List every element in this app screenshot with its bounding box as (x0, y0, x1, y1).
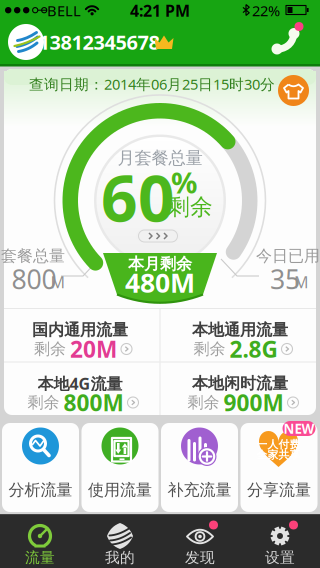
staticText: 800 (11, 261, 56, 297)
button[interactable]: 查询日期：2014年06月25日15时30分 (4, 69, 316, 107)
staticText: 13812345678 (38, 29, 159, 55)
staticText: 剩余 (187, 393, 219, 412)
staticText: 22% (252, 1, 280, 20)
staticText: 剩余 (27, 393, 59, 412)
staticText: 480M (125, 265, 195, 300)
staticText: 本月剩余 (128, 254, 192, 274)
staticText: M (294, 271, 309, 293)
button[interactable]: 流量 (0, 514, 80, 568)
staticText: 20M (70, 334, 117, 364)
button[interactable]: 设置 (240, 514, 320, 568)
button[interactable]: 分析流量 (2, 423, 79, 512)
button[interactable]: 本地4G流量 (2, 361, 158, 415)
staticText: 全家共享 (256, 448, 300, 461)
staticText: 分享流量 (247, 480, 311, 500)
staticText: 设置 (265, 548, 295, 566)
staticText: 查询日期：2014年06月25日15时30分 (29, 74, 275, 94)
button[interactable]: 使用流量 (81, 423, 158, 512)
button[interactable]: 一人付费 (240, 423, 317, 512)
staticText: 套餐总量 (1, 246, 65, 266)
staticText: 补充流量 (167, 480, 231, 500)
staticText: 月套餐总量 (117, 147, 202, 169)
staticText: 本地闲时流量 (192, 374, 288, 393)
staticText: 本地通用流量 (192, 320, 288, 340)
staticText: 分析流量 (8, 480, 72, 500)
staticText: % (171, 162, 197, 201)
staticText: 剩余 (34, 339, 66, 359)
button[interactable]: 国内通用流量 (2, 308, 158, 361)
staticText: NEW (283, 420, 314, 437)
staticText: 流量 (25, 548, 55, 566)
staticText: 今日已用 (256, 246, 320, 266)
button[interactable]: 本地通用流量 (162, 308, 318, 361)
staticText: 一人付费 (256, 438, 300, 451)
button[interactable] (266, 22, 310, 62)
staticText: 35 (270, 261, 300, 297)
button[interactable]: 补充流量 (161, 423, 238, 512)
staticText: 2.8G (229, 334, 277, 364)
button[interactable]: 本地闲时流量 (162, 361, 318, 415)
staticText: 发现 (185, 548, 215, 566)
staticText: 800M (63, 387, 123, 417)
staticText: 剩余 (167, 193, 213, 221)
button[interactable]: 我的 (80, 514, 160, 568)
staticText: 使用流量 (88, 480, 152, 500)
button[interactable]: 发现 (160, 514, 240, 568)
staticText: 剩余 (193, 339, 225, 359)
staticText: M (50, 271, 65, 293)
staticText: 60 (101, 154, 175, 239)
staticText: 4:21 PM (130, 0, 190, 21)
button[interactable] (128, 226, 188, 246)
staticText: 我的 (105, 548, 135, 566)
staticText: BELL (47, 1, 81, 20)
staticText: 900M (223, 387, 283, 417)
staticText: 本地4G流量 (37, 373, 122, 394)
staticText: 国内通用流量 (32, 320, 128, 340)
